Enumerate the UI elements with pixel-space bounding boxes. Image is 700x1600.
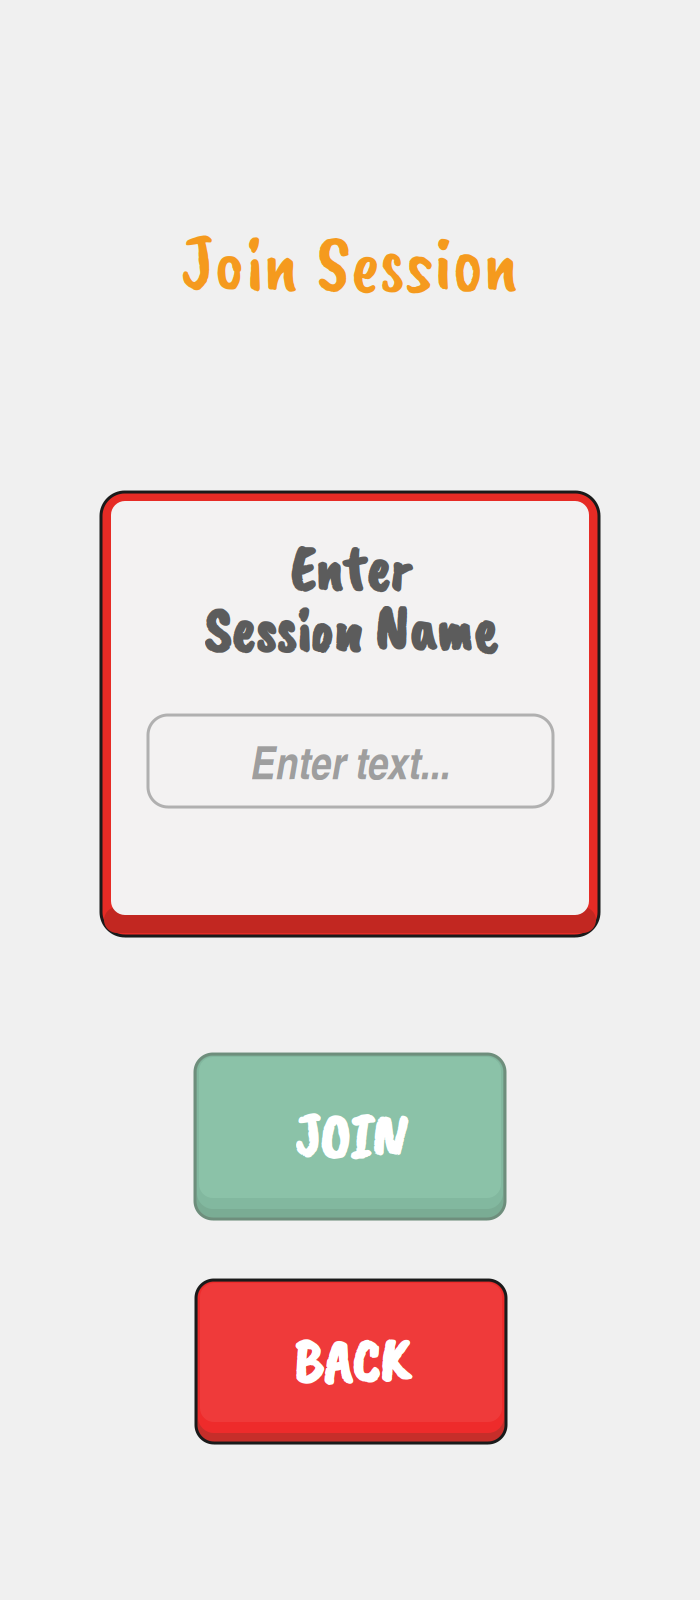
staticText: Session Name <box>203 590 496 669</box>
staticText: Enter <box>289 529 410 608</box>
staticText: Join Session <box>181 213 519 313</box>
staticText: Enter text... <box>250 729 450 793</box>
button[interactable]: Enter text... <box>148 715 553 807</box>
button[interactable]: JOIN <box>195 1054 505 1219</box>
button[interactable]: BACK <box>196 1280 506 1443</box>
staticText: JOIN <box>294 1098 405 1175</box>
staticText: BACK <box>293 1323 409 1400</box>
